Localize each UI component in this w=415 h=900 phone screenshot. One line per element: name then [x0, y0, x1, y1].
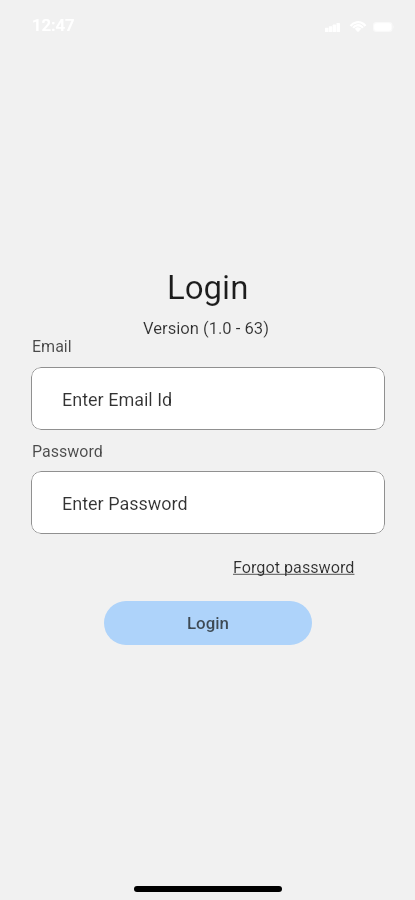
staticText: 12:47: [32, 15, 75, 35]
staticText: Version (1.0 - 63): [143, 319, 269, 338]
button[interactable]: Login: [104, 601, 312, 645]
staticText: Login: [187, 613, 229, 633]
staticText: Email: [32, 337, 72, 356]
staticText: Forgot password: [233, 558, 355, 577]
staticText: Enter Password: [62, 493, 188, 514]
staticText: Login: [167, 268, 249, 307]
button[interactable]: Enter Email Id: [31, 367, 385, 430]
staticText: Enter Email Id: [62, 389, 173, 410]
other: Wi-Fi: [349, 20, 367, 31]
staticText: Password: [32, 442, 103, 461]
button[interactable]: Forgot password: [233, 558, 355, 577]
button[interactable]: Enter Password: [31, 471, 385, 534]
other: Battery: [373, 22, 394, 32]
other: Cellular signal: [325, 23, 340, 32]
